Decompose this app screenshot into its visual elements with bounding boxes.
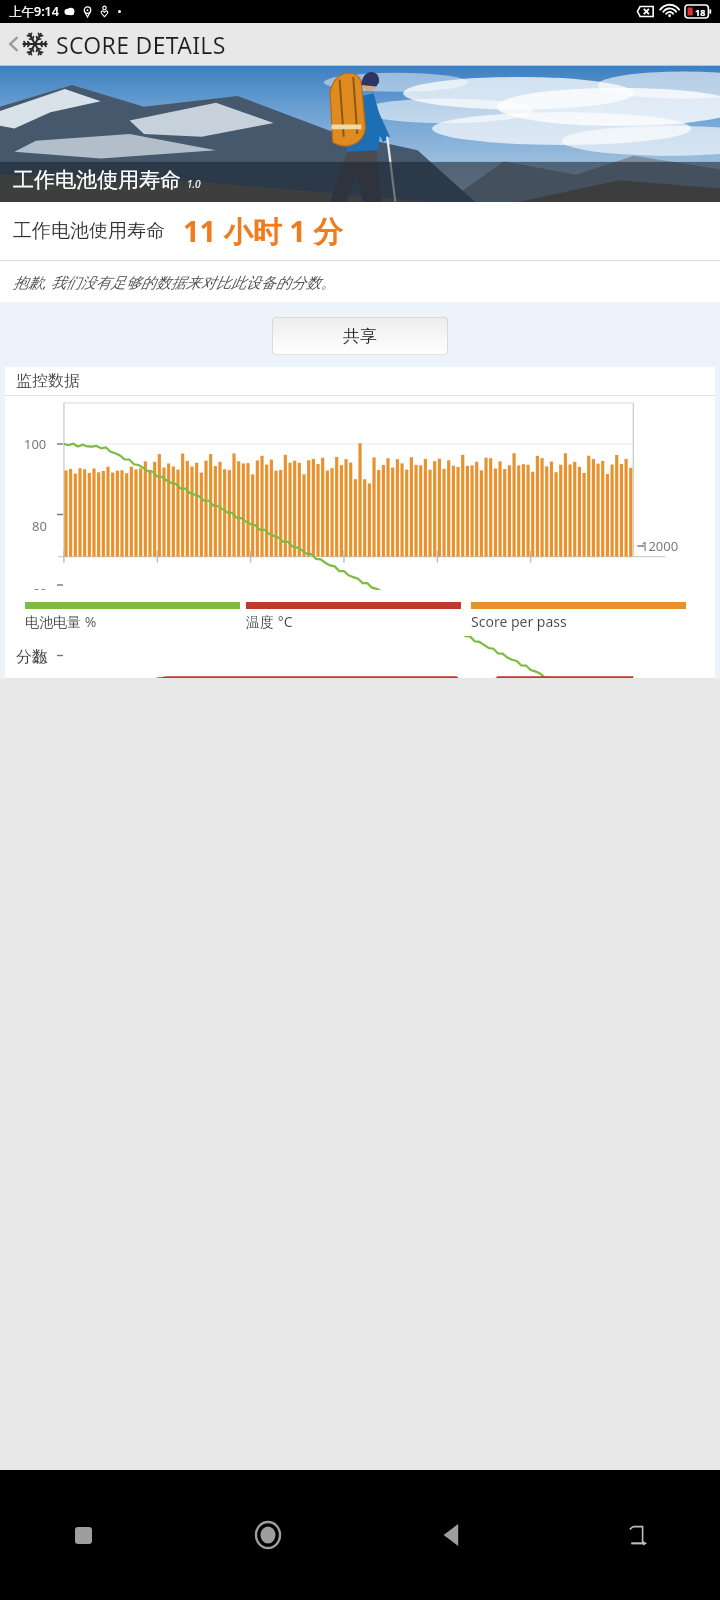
button[interactable]: 共享 [272, 317, 448, 355]
staticText: 80 [32, 517, 47, 535]
staticText: 40 [32, 650, 47, 668]
staticText: SCORE DETAILS [56, 29, 226, 60]
staticText: 温度 °C [246, 612, 293, 631]
staticText: 18 [695, 6, 706, 18]
staticText: 12000 [641, 537, 679, 555]
other: Back [7, 33, 20, 55]
staticText: 分数 [16, 647, 48, 667]
staticText: Score per pass [471, 612, 567, 631]
staticText: 上午9:14 [9, 3, 59, 20]
staticText: 60 [32, 584, 47, 602]
button[interactable]: Home [245, 1512, 291, 1558]
staticText: 100 [24, 435, 47, 453]
staticText: 监控数据 [16, 371, 80, 391]
staticText: 电池电量 % [25, 612, 97, 631]
button[interactable]: Back [0, 23, 720, 65]
staticText: 共享 [343, 326, 377, 347]
button[interactable]: Recents [60, 1512, 106, 1558]
staticText: 1.0 [187, 177, 201, 191]
staticText: 工作电池使用寿命 [13, 219, 165, 243]
button[interactable]: Rotate screen [614, 1512, 660, 1558]
staticText: 工作电池使用寿命 [13, 167, 181, 193]
staticText: 抱歉, 我们没有足够的数据来对比此设备的分数。 [13, 272, 336, 292]
staticText: 11 小时 1 分 [183, 211, 343, 251]
button[interactable]: Back [429, 1512, 475, 1558]
